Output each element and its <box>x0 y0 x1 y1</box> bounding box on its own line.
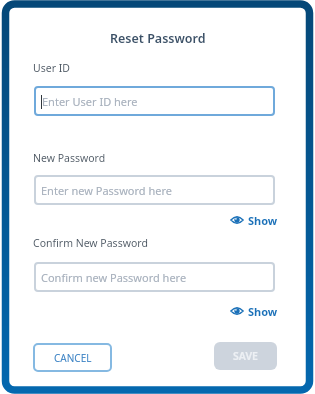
staticText: User ID <box>33 61 70 75</box>
staticText: Enter new Password here <box>41 183 172 198</box>
staticText: Enter User ID here <box>42 94 138 109</box>
button[interactable]: Enter User ID here <box>34 86 275 116</box>
staticText: Confirm New Password <box>33 236 148 250</box>
button[interactable]: SAVE <box>214 342 277 370</box>
button[interactable]: Show <box>231 304 278 319</box>
button[interactable]: Confirm new Password here <box>34 262 275 292</box>
button[interactable]: CANCEL <box>33 343 112 372</box>
staticText: Show <box>248 213 278 228</box>
staticText: Reset Password <box>110 30 206 47</box>
staticText: New Password <box>33 151 106 165</box>
staticText: SAVE <box>233 349 258 363</box>
button[interactable]: Show <box>231 213 278 228</box>
button[interactable]: Enter new Password here <box>34 175 275 205</box>
staticText: Confirm new Password here <box>41 270 187 285</box>
staticText: CANCEL <box>54 351 92 365</box>
staticText: Show <box>248 304 278 319</box>
